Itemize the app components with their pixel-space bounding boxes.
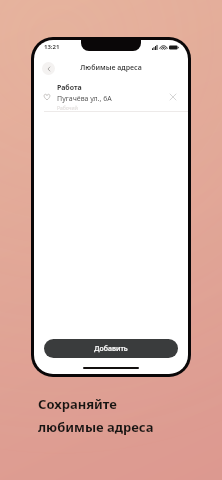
staticText: любимые адреса bbox=[38, 418, 154, 436]
button[interactable]: Remove address bbox=[167, 91, 179, 103]
staticText: Работа bbox=[57, 83, 82, 93]
staticText: Пугачёва ул., 6А bbox=[57, 94, 112, 104]
button[interactable]: Добавить bbox=[44, 339, 178, 358]
staticText: 13:21 bbox=[44, 43, 60, 51]
button[interactable]: Работа bbox=[34, 83, 188, 111]
staticText: Сохраняйте bbox=[38, 395, 117, 413]
button[interactable]: Back bbox=[42, 62, 55, 75]
staticText: Добавить bbox=[94, 344, 128, 354]
staticText: Рабочий bbox=[57, 105, 78, 111]
staticText: Любимые адреса bbox=[80, 63, 142, 73]
